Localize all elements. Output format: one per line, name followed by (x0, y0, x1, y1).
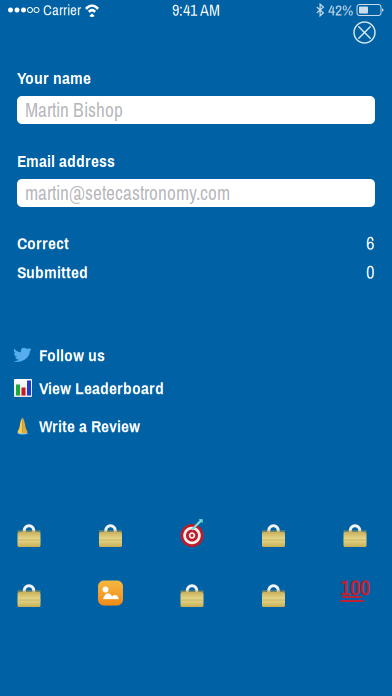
staticText: martin@setecastronomy.com (25, 180, 230, 206)
staticText: 0 (366, 259, 375, 284)
staticText: View Leaderboard (39, 376, 164, 400)
staticText: Correct (17, 231, 69, 255)
button[interactable]: Follow us (12, 345, 375, 365)
staticText: Martin Bishop (25, 97, 123, 123)
staticText: Write a Review (39, 414, 140, 438)
button[interactable]: Martin Bishop (17, 96, 375, 124)
staticText: Email address (17, 149, 115, 172)
staticText: 100 (340, 572, 370, 602)
staticText: 6 (366, 230, 375, 255)
staticText: 9:41 AM (172, 0, 220, 21)
button[interactable]: Write a Review (12, 416, 375, 436)
staticText: Your name (17, 66, 91, 89)
button[interactable]: Close (348, 16, 381, 49)
staticText: Submitted (17, 260, 88, 284)
button[interactable]: martin@setecastronomy.com (17, 179, 375, 207)
staticText: 42% (328, 0, 353, 20)
staticText: Carrier (43, 0, 81, 20)
staticText: Follow us (39, 343, 105, 367)
button[interactable]: View Leaderboard (12, 378, 375, 398)
